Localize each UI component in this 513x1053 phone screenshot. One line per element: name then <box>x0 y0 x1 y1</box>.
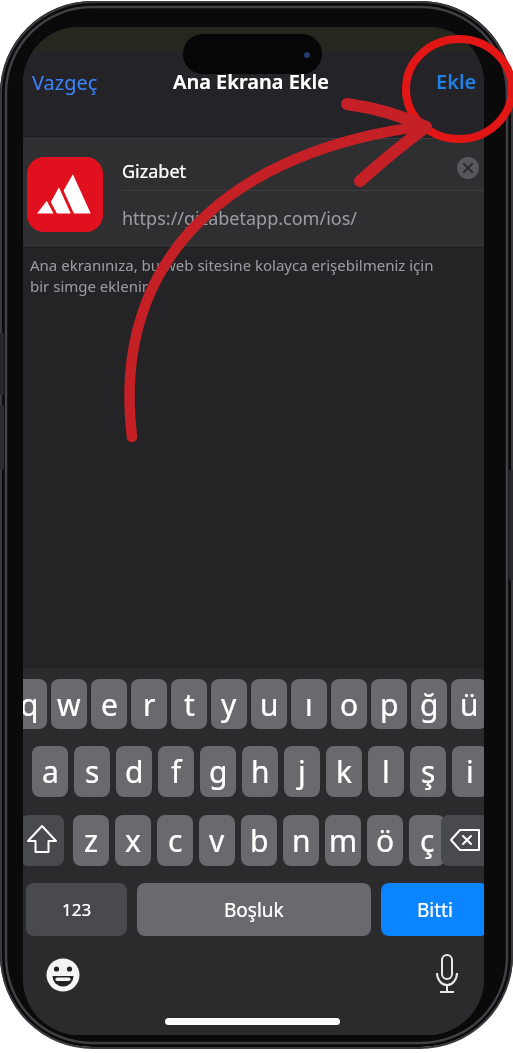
staticText: bir simge eklenir. <box>30 276 150 296</box>
staticText: ç <box>420 820 435 861</box>
button[interactable]: Ekle <box>431 67 481 95</box>
staticText: Ana Ekrana Ekle <box>173 68 329 95</box>
staticText: ü <box>460 684 479 725</box>
staticText: i <box>466 751 474 792</box>
button[interactable]: ğ <box>411 679 447 729</box>
staticText: o <box>340 684 359 725</box>
button[interactable]: k <box>326 746 362 797</box>
staticText: g <box>209 751 228 792</box>
staticText: v <box>209 820 225 861</box>
button[interactable]: b <box>241 815 277 866</box>
staticText: e <box>101 684 118 725</box>
staticText: p <box>380 684 399 725</box>
button[interactable]: ö <box>367 815 403 866</box>
staticText: k <box>336 751 353 792</box>
staticText: z <box>84 820 99 861</box>
staticText: ö <box>376 820 395 861</box>
button[interactable]: y <box>211 679 247 729</box>
button[interactable]: r <box>131 679 167 729</box>
staticText: t <box>184 684 195 725</box>
staticText: x <box>125 820 141 861</box>
button[interactable]: j <box>284 746 320 797</box>
staticText: q <box>23 684 39 725</box>
button[interactable] <box>46 958 80 992</box>
button[interactable]: p <box>371 679 407 729</box>
staticText: d <box>125 751 144 792</box>
staticText: Boşluk <box>224 897 284 923</box>
staticText: ş <box>421 751 436 792</box>
staticText: Vazgeç <box>32 69 98 96</box>
button[interactable] <box>115 139 484 191</box>
button[interactable]: w <box>51 679 87 729</box>
button[interactable]: g <box>200 746 236 797</box>
staticText: ğ <box>420 684 439 725</box>
button[interactable]: ç <box>409 815 445 866</box>
button[interactable] <box>431 953 463 997</box>
button[interactable]: v <box>199 815 235 866</box>
staticText: y <box>221 684 237 725</box>
staticText: f <box>171 751 182 792</box>
button[interactable]: s <box>74 746 110 797</box>
button[interactable]: d <box>116 746 152 797</box>
button[interactable]: i <box>452 746 484 797</box>
staticText: Bitti <box>417 897 453 923</box>
button[interactable]: c <box>157 815 193 866</box>
button[interactable]: x <box>115 815 151 866</box>
button[interactable] <box>23 815 64 866</box>
button[interactable]: q <box>23 679 47 729</box>
staticText: n <box>292 820 311 861</box>
staticText: ı <box>305 684 313 725</box>
button[interactable]: ü <box>451 679 484 729</box>
staticText: u <box>260 684 279 725</box>
staticText: j <box>298 751 306 792</box>
staticText: Ekle <box>436 68 477 95</box>
button[interactable] <box>115 191 484 246</box>
button[interactable]: h <box>242 746 278 797</box>
button[interactable]: l <box>368 746 404 797</box>
staticText: 123 <box>62 898 92 921</box>
button[interactable]: a <box>32 746 68 797</box>
button[interactable]: ı <box>291 679 327 729</box>
button[interactable]: Vazgeç <box>25 67 105 97</box>
staticText: c <box>168 820 183 861</box>
button[interactable]: n <box>283 815 319 866</box>
button[interactable]: Boşluk <box>137 883 371 936</box>
staticText: h <box>251 751 270 792</box>
button[interactable]: t <box>171 679 207 729</box>
staticText: w <box>57 684 81 725</box>
staticText: l <box>382 751 390 792</box>
button[interactable]: e <box>91 679 127 729</box>
staticText: a <box>42 751 59 792</box>
button[interactable] <box>457 157 479 179</box>
button[interactable]: o <box>331 679 367 729</box>
button[interactable]: f <box>158 746 194 797</box>
staticText: b <box>250 820 269 861</box>
staticText: m <box>329 820 358 861</box>
staticText: s <box>85 751 100 792</box>
button[interactable]: 123 <box>26 883 127 936</box>
staticText: Gizabet <box>122 159 187 184</box>
button[interactable]: ş <box>410 746 446 797</box>
staticText: https://gizabetapp.com/ios/ <box>122 206 357 231</box>
button[interactable]: Bitti <box>381 883 484 936</box>
button[interactable]: u <box>251 679 287 729</box>
button[interactable]: m <box>325 815 361 866</box>
button[interactable] <box>441 815 484 866</box>
staticText: Ana ekranınıza, bu web sitesine kolayca … <box>30 255 434 275</box>
button[interactable]: z <box>73 815 109 866</box>
staticText: r <box>143 684 156 725</box>
